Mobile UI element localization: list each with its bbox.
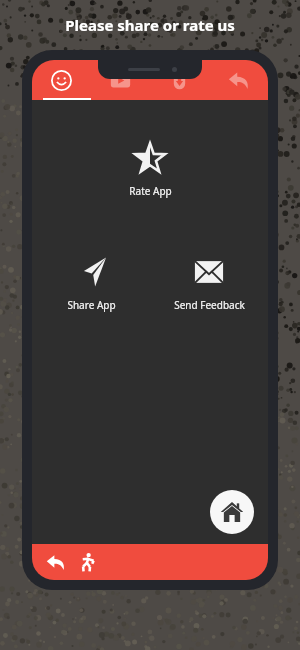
staticText: Send Feedback <box>174 298 245 312</box>
button[interactable]: Rate App <box>90 138 210 202</box>
button[interactable]: Videos <box>91 60 150 100</box>
button[interactable]: Walk <box>72 547 102 577</box>
staticText: Share App <box>67 298 116 312</box>
button[interactable]: Downloads <box>150 60 209 100</box>
button[interactable]: Rate and share <box>32 60 91 100</box>
button[interactable]: Home <box>210 490 254 534</box>
button[interactable]: Back <box>40 547 70 577</box>
button[interactable]: Send Feedback <box>150 252 268 316</box>
button[interactable]: Share App <box>32 252 150 316</box>
staticText: Rate App <box>129 184 172 198</box>
staticText: Please share or rate us <box>65 15 235 35</box>
button[interactable]: Back <box>209 60 268 100</box>
